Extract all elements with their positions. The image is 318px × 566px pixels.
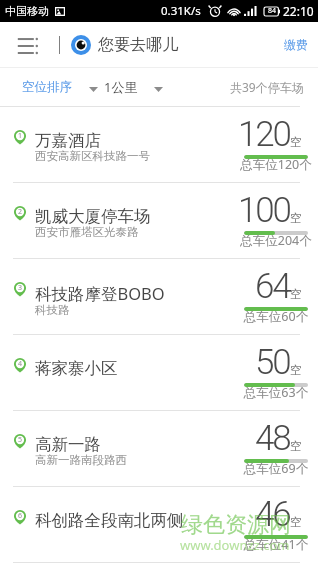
staticText: 总车位69个 [231,460,318,477]
staticText: 120 [238,114,290,155]
button[interactable]: 空位排序 [22,79,98,95]
staticText: 总车位60个 [231,308,318,325]
staticText: 64 [255,266,290,307]
staticText: 中国移动 [5,4,49,18]
staticText: 科技路摩登BOBO [35,282,165,305]
staticText: 科技路 [35,303,70,317]
button[interactable]: 4 [0,335,318,411]
staticText: 空 [290,363,302,377]
staticText: 100 [238,190,290,231]
staticText: 科创路全段南北两侧 [35,510,184,531]
staticText: 2 [18,207,23,217]
staticText: 西安市雁塔区光泰路 [35,225,139,239]
staticText: 您要去哪儿 [98,35,178,55]
staticText: 总车位41个 [231,536,318,553]
staticText: 蒋家寨小区 [35,358,118,379]
staticText: 5 [18,435,23,445]
staticText: 凯威大厦停车场 [35,206,151,227]
staticText: 0.31K/s [161,3,201,19]
staticText: 总车位204个 [231,232,318,249]
staticText: 22:10 [283,3,314,19]
staticText: 48 [255,418,290,459]
staticText: 万嘉酒店 [35,130,101,151]
button[interactable]: 缴费 [274,22,318,67]
staticText: 总车位63个 [231,384,318,401]
button[interactable]: 6 [0,487,318,563]
button[interactable]: 1公里 [104,78,163,96]
staticText: 46 [255,494,290,535]
staticText: 1公里 [104,78,138,96]
staticText: 共39个停车场 [230,79,304,95]
button[interactable]: Menu [17,32,38,58]
button[interactable]: 1 [0,107,318,183]
staticText: 3 [18,283,23,293]
staticText: 4 [18,359,23,369]
staticText: 高新一路南段路西 [35,453,127,467]
staticText: 总车位120个 [231,156,318,173]
staticText: 84 [268,6,277,16]
staticText: 空 [290,515,302,529]
staticText: 1 [18,131,23,141]
staticText: 50 [255,342,290,383]
staticText: 空 [290,211,302,225]
staticText: 空 [290,439,302,453]
staticText: 空 [290,287,302,301]
button[interactable]: 3 [0,259,318,335]
staticText: 高新一路 [35,434,101,455]
staticText: 绿色资源网 [181,511,291,539]
button[interactable]: 2 [0,183,318,259]
button[interactable]: 5 [0,411,318,487]
staticText: 缴费 [284,37,308,52]
staticText: www.downzz.com [180,536,290,554]
staticText: 空位排序 [22,79,72,95]
staticText: 空 [290,135,302,149]
staticText: 西安高新区科技路一号 [35,149,150,163]
staticText: 6 [18,511,23,521]
